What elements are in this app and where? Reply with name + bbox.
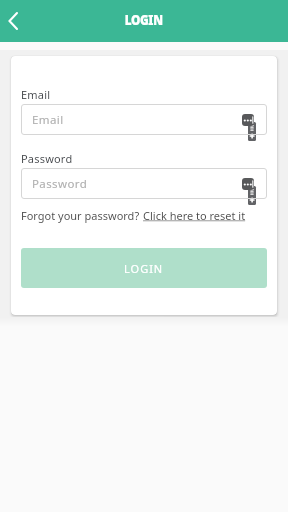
button[interactable]: [0, 0, 36, 42]
staticText: Forgot your password?: [21, 208, 143, 223]
button[interactable]: Click here to reset it: [143, 208, 246, 223]
staticText: Password: [32, 176, 88, 192]
button[interactable]: Password: [21, 168, 267, 199]
staticText: LOGIN: [125, 10, 163, 29]
staticText: Email: [32, 112, 64, 128]
staticText: Password: [21, 151, 73, 166]
staticText: Email: [21, 87, 51, 102]
button[interactable]: LOGIN: [21, 248, 267, 288]
button[interactable]: Email: [21, 104, 267, 135]
staticText: LOGIN: [124, 261, 164, 276]
